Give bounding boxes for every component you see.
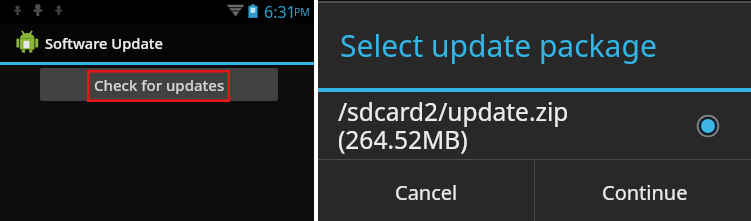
- button[interactable]: Continue: [535, 160, 751, 221]
- button[interactable]: Selected package: [696, 114, 720, 138]
- staticText: Select update package: [340, 25, 657, 66]
- staticText: PM: [294, 5, 310, 19]
- staticText: /sdcard2/update.zip (264.52MB): [338, 95, 696, 156]
- staticText: Software Update: [45, 33, 163, 53]
- staticText: Continue: [602, 179, 688, 206]
- staticText: Cancel: [395, 179, 458, 206]
- button[interactable]: Cancel: [318, 160, 534, 221]
- button[interactable]: Check for updates: [40, 68, 278, 101]
- staticText: 6:31: [264, 1, 296, 23]
- button[interactable]: /sdcard2/update.zip (264.52MB): [318, 92, 751, 159]
- staticText: Check for updates: [94, 75, 225, 95]
